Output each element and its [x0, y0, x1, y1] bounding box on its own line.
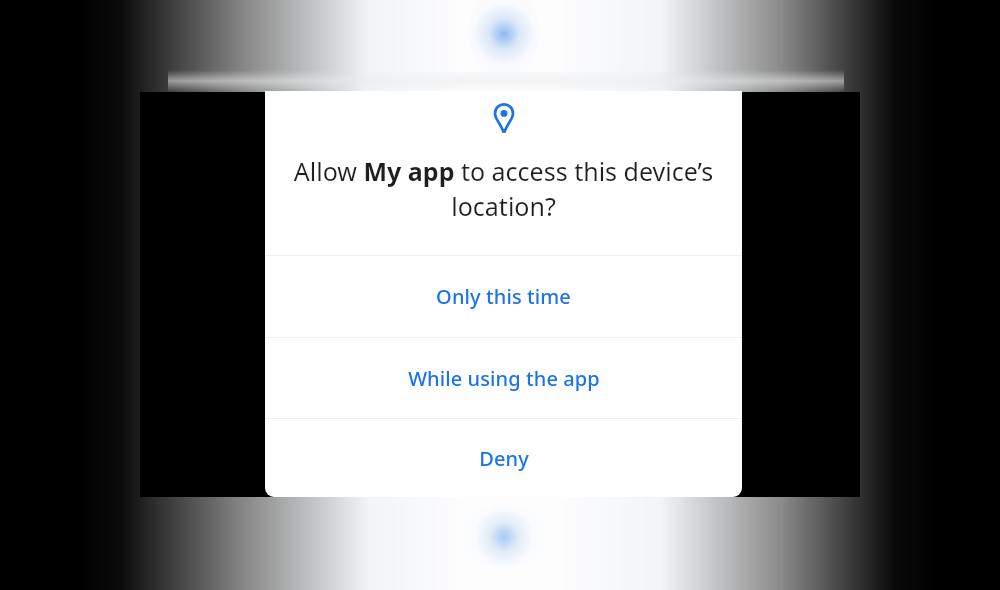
button[interactable]: While using the app [265, 338, 742, 418]
staticText: Allow My app to access this device’s loc… [281, 154, 726, 224]
button[interactable]: Only this time [265, 256, 742, 337]
staticText: While using the app [408, 365, 600, 392]
staticText: Deny [479, 445, 529, 472]
button[interactable]: Deny [265, 419, 742, 497]
other: Location [491, 103, 517, 134]
staticText: Only this time [436, 283, 571, 310]
